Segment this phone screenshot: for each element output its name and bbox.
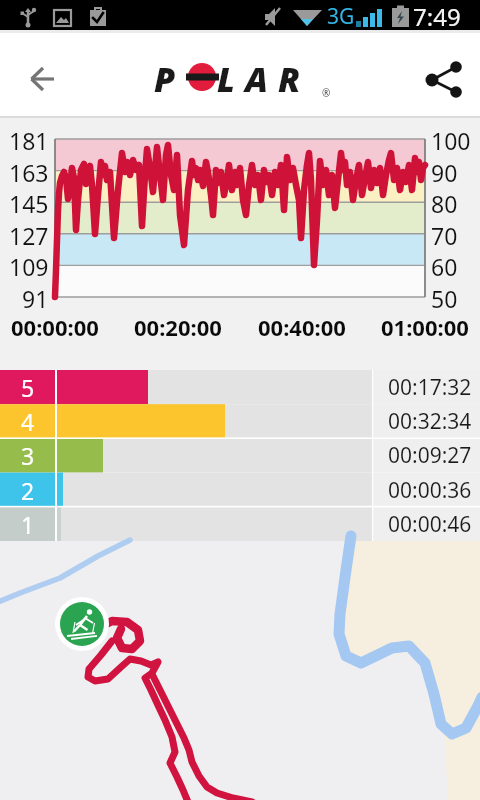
button[interactable]	[416, 50, 472, 106]
button[interactable]: 4	[0, 404, 55, 438]
staticText: 181	[9, 125, 49, 153]
staticText: 109	[9, 251, 49, 279]
staticText: P	[154, 56, 186, 98]
staticText: 00:09:27	[388, 441, 472, 470]
staticText: 7:49	[413, 0, 461, 33]
staticText: 91	[22, 283, 49, 311]
button[interactable]	[10, 52, 58, 100]
button[interactable]: 2	[0, 473, 55, 507]
staticText: 00:00:46	[388, 510, 472, 539]
staticText: 145	[9, 188, 49, 216]
staticText: 2	[21, 475, 35, 506]
staticText: 90	[431, 157, 458, 185]
staticText: 70	[431, 220, 458, 248]
button[interactable]	[55, 597, 109, 651]
button[interactable]: 3	[0, 438, 55, 472]
staticText: 01:00:00	[381, 312, 469, 340]
staticText: 60	[431, 251, 458, 279]
staticText: 00:00:00	[11, 312, 99, 340]
staticText: 4	[21, 406, 35, 437]
staticText: 00:00:36	[388, 476, 472, 505]
staticText: 00:40:00	[258, 312, 346, 340]
staticText: 00:20:00	[134, 312, 222, 340]
button[interactable]: 1	[0, 507, 55, 541]
staticText: 5	[21, 372, 35, 403]
staticText: 80	[431, 188, 458, 216]
staticText: 1	[21, 509, 35, 540]
staticText: 100	[431, 125, 471, 153]
staticText: LAR	[217, 56, 311, 98]
staticText: 3	[21, 440, 35, 471]
staticText: 3G	[327, 2, 355, 31]
button[interactable]: P	[150, 56, 335, 98]
staticText: 50	[431, 283, 458, 311]
staticText: 163	[9, 157, 49, 185]
button[interactable]: 5	[0, 370, 55, 404]
staticText: 00:32:34	[388, 407, 472, 436]
staticText: 00:17:32	[388, 373, 472, 402]
staticText: ®	[322, 86, 331, 100]
staticText: 127	[9, 220, 49, 248]
